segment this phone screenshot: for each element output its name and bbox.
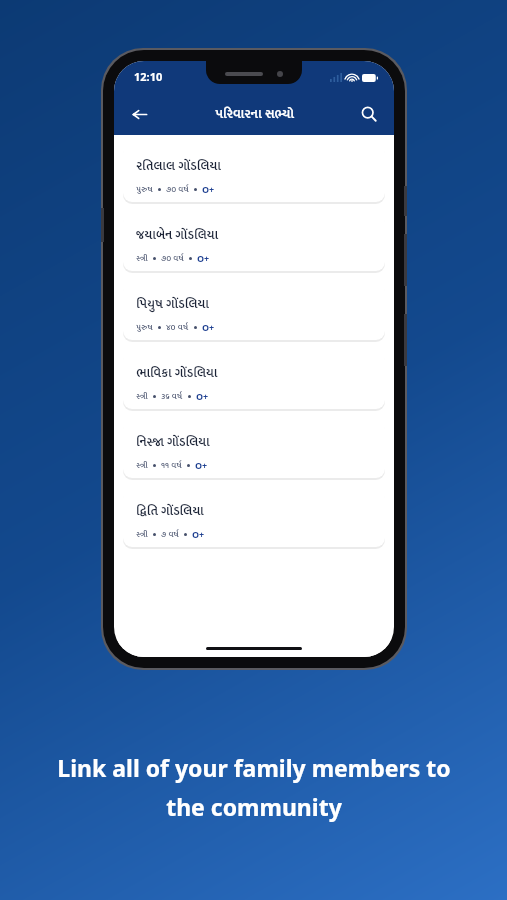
staticText: O+: [196, 390, 209, 402]
staticText: રતિલાલ ગોંડલિયા: [136, 156, 221, 177]
staticText: 12:10: [134, 69, 163, 84]
staticText: ૩૬ વર્ષ: [161, 389, 183, 403]
staticText: સ્ત્રી: [136, 251, 148, 265]
button[interactable]: પિયુષ ગોંડલિયા: [123, 282, 385, 340]
button[interactable]: Search: [352, 97, 386, 131]
staticText: ૪૦ વર્ષ: [166, 320, 189, 334]
staticText: પુરુષ: [136, 182, 153, 196]
staticText: જયાબેન ગોંડલિયા: [136, 225, 218, 246]
staticText: પુરુષ: [136, 320, 153, 334]
button[interactable]: Back: [122, 97, 156, 131]
staticText: સ્ત્રી: [136, 458, 148, 472]
staticText: O+: [197, 252, 210, 264]
staticText: O+: [195, 459, 208, 471]
button[interactable]: ભાવિકા ગોંડલિયા: [123, 351, 385, 409]
staticText: ૭ વર્ષ: [161, 527, 179, 541]
staticText: ભાવિકા ગોંડલિયા: [136, 363, 218, 384]
staticText: O+: [202, 321, 215, 333]
staticText: Link all of your family members to: [57, 752, 451, 783]
staticText: ૭૦ વર્ષ: [166, 182, 189, 196]
staticText: સ્ત્રી: [136, 389, 148, 403]
staticText: the community: [166, 791, 342, 822]
staticText: ૧૧ વર્ષ: [161, 458, 182, 472]
button[interactable]: રતિલાલ ગોંડલિયા: [123, 144, 385, 202]
staticText: નિસ્જા ગોંડલિયા: [136, 432, 210, 453]
button[interactable]: નિસ્જા ગોંડલિયા: [123, 420, 385, 478]
staticText: પિયુષ ગોંડલિયા: [136, 294, 209, 315]
staticText: પરિવારના સભ્યો: [215, 103, 294, 125]
staticText: ૭૦ વર્ષ: [161, 251, 184, 265]
button[interactable]: જયાબેન ગોંડલિયા: [123, 213, 385, 271]
staticText: દ્વિતિ ગોંડલિયા: [136, 501, 204, 522]
staticText: O+: [202, 183, 215, 195]
button[interactable]: દ્વિતિ ગોંડલિયા: [123, 489, 385, 547]
staticText: O+: [192, 528, 205, 540]
staticText: સ્ત્રી: [136, 527, 148, 541]
